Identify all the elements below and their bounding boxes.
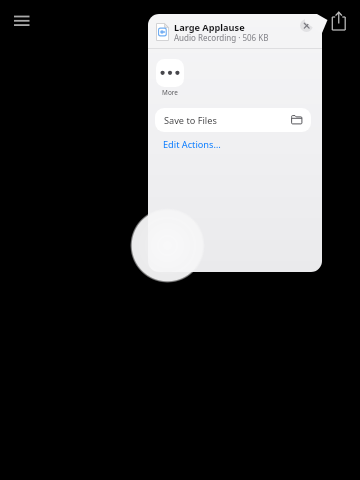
- button[interactable]: [10, 12, 34, 32]
- staticText: More: [150, 88, 190, 97]
- button[interactable]: [329, 9, 349, 33]
- staticText: Audio Recording · 506 KB: [174, 32, 269, 43]
- staticText: Large Applause: [174, 21, 245, 34]
- staticText: Edit Actions…: [163, 138, 221, 151]
- button[interactable]: Save to Files: [155, 108, 311, 132]
- button[interactable]: [300, 19, 313, 32]
- button[interactable]: Edit Actions…: [163, 138, 221, 151]
- button[interactable]: [156, 59, 184, 87]
- staticText: Save to Files: [164, 114, 217, 127]
